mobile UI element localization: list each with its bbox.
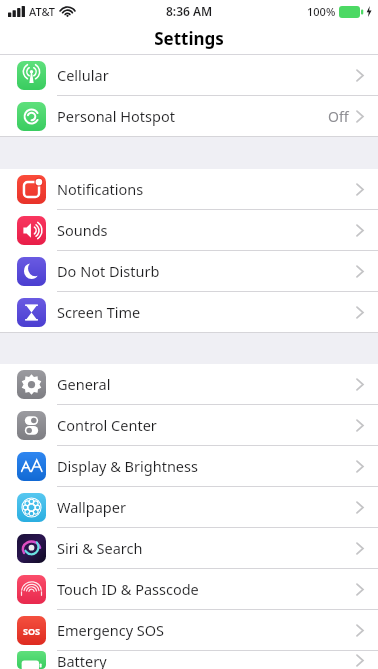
staticText: SOS	[23, 625, 41, 637]
staticText: 8:36 AM	[166, 3, 213, 19]
staticText: Screen Time	[57, 302, 141, 322]
button[interactable]: Battery	[0, 651, 378, 669]
button[interactable]: General	[0, 364, 378, 405]
staticText: Display & Brightness	[57, 456, 198, 476]
staticText: Personal Hotspot	[57, 106, 175, 126]
button[interactable]: Control Center	[0, 405, 378, 446]
staticText: Cellular	[57, 65, 109, 85]
staticText: General	[57, 374, 111, 394]
staticText: Settings	[154, 27, 224, 50]
button[interactable]: Sounds	[0, 210, 378, 251]
button[interactable]: Display & Brightness	[0, 446, 378, 487]
button[interactable]: Touch ID & Passcode	[0, 569, 378, 610]
button[interactable]: Cellular	[0, 55, 378, 96]
staticText: Siri & Search	[57, 538, 143, 558]
button[interactable]: Personal Hotspot	[0, 96, 378, 137]
staticText: Sounds	[57, 220, 108, 240]
button[interactable]: Do Not Disturb	[0, 251, 378, 292]
staticText: Control Center	[57, 415, 157, 435]
staticText: Notifications	[57, 179, 144, 199]
button[interactable]: Siri & Search	[0, 528, 378, 569]
staticText: Off	[328, 107, 349, 126]
button[interactable]: Notifications	[0, 169, 378, 210]
staticText: 100%	[307, 4, 336, 19]
staticText: Battery	[57, 651, 107, 669]
button[interactable]: Wallpaper	[0, 487, 378, 528]
staticText: Do Not Disturb	[57, 261, 160, 281]
button[interactable]: Screen Time	[0, 292, 378, 333]
staticText: Emergency SOS	[57, 620, 165, 640]
staticText: AT&T	[29, 4, 56, 19]
staticText: Wallpaper	[57, 497, 126, 517]
button[interactable]: SOS	[0, 610, 378, 651]
staticText: Touch ID & Passcode	[57, 579, 199, 599]
